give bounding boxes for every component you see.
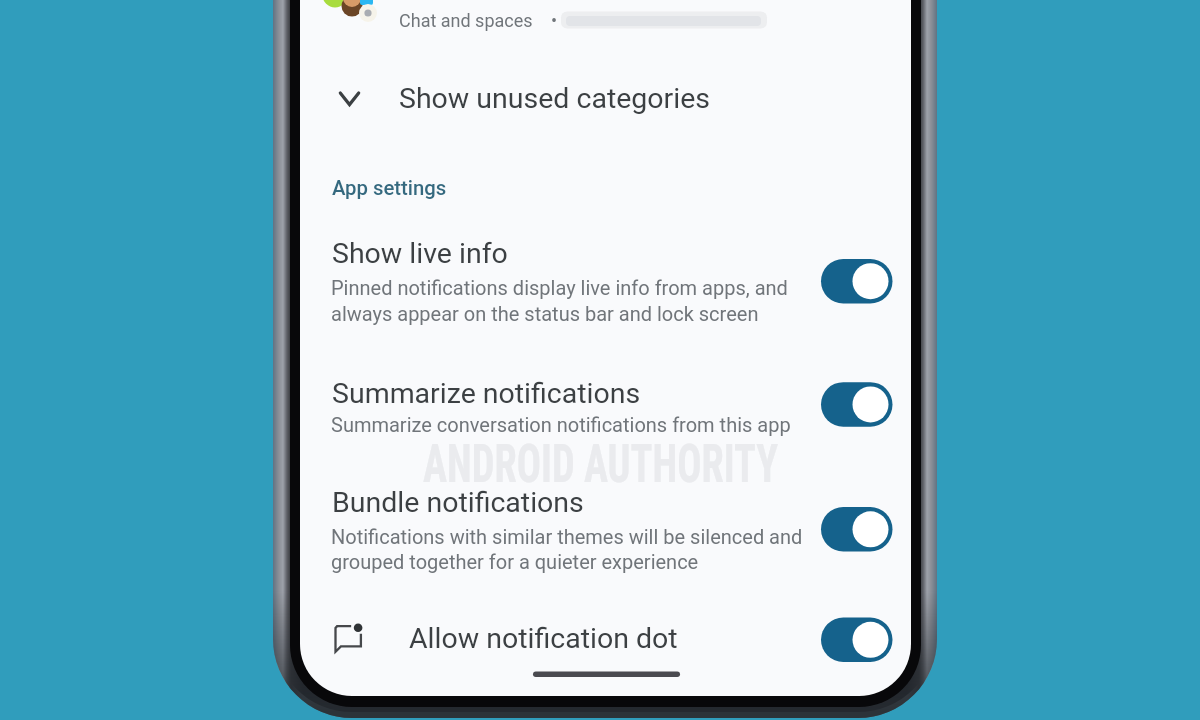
staticText: • [551, 10, 558, 31]
button[interactable]: Bundle notifications toggle [821, 507, 893, 552]
staticText: Notifications with similar themes will b… [331, 525, 803, 548]
staticText: Chat and spaces [399, 10, 533, 31]
button[interactable] [300, 608, 911, 670]
button[interactable]: Summarize notifications toggle [821, 382, 893, 427]
staticText: Summarize conversation notifications fro… [331, 413, 791, 436]
button[interactable]: Allow notification dot toggle [821, 618, 893, 663]
staticText: App settings [332, 176, 447, 200]
staticText: Pinned notifications display live info f… [331, 276, 788, 299]
staticText: Allow notification dot [409, 622, 678, 655]
button[interactable] [300, 478, 911, 582]
staticText: Summarize notifications [332, 377, 641, 410]
button[interactable]: Show live info toggle [821, 259, 893, 304]
button[interactable] [300, 72, 911, 128]
button[interactable] [300, 366, 911, 444]
staticText: Show unused categories [399, 82, 711, 115]
staticText: Bundle notifications [332, 486, 584, 519]
button[interactable] [300, 228, 911, 332]
staticText: ANDROID AUTHORITY [423, 432, 779, 495]
staticText: always appear on the status bar and lock… [331, 302, 759, 325]
staticText: Show live info [332, 237, 508, 270]
staticText: grouped together for a quieter experienc… [331, 550, 699, 573]
button[interactable]: Chat and spaces account [300, 0, 911, 46]
